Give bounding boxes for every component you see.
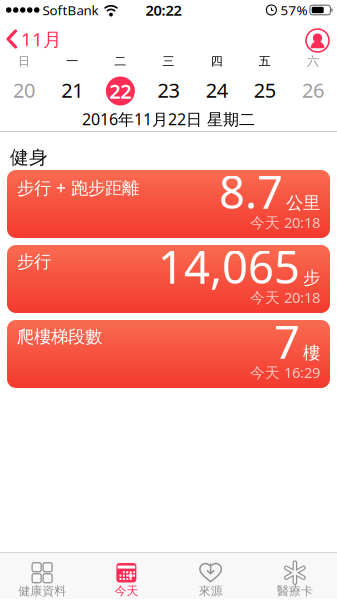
staticText: 今天	[114, 584, 138, 598]
button[interactable]: 步行	[7, 245, 330, 313]
staticText: SoftBank	[42, 1, 98, 19]
staticText: 11月	[21, 27, 62, 51]
staticText: 公里	[286, 192, 320, 214]
staticText: 步行 + 跑步距離	[17, 176, 139, 199]
staticText: 24	[206, 77, 228, 103]
staticText: 五	[259, 54, 271, 69]
staticText: 今天 20:18	[250, 212, 320, 232]
staticText: 7	[274, 311, 300, 371]
staticText: 步	[303, 267, 320, 289]
staticText: 來源	[199, 584, 223, 598]
staticText: 14,065	[158, 236, 300, 296]
staticText: 步行	[17, 251, 51, 272]
button[interactable]: 22	[96, 75, 144, 105]
staticText: 今天 20:18	[250, 287, 320, 307]
staticText: 六	[307, 54, 319, 69]
staticText: 日	[18, 54, 30, 69]
staticText: 一	[66, 54, 78, 69]
button[interactable]: 23	[144, 75, 192, 105]
staticText: 20:22	[145, 0, 181, 20]
button[interactable]: 21	[48, 75, 96, 105]
button[interactable]: 健康資料	[0, 553, 84, 599]
staticText: 二	[114, 54, 126, 69]
staticText: 21	[61, 77, 83, 103]
button[interactable]: 20	[0, 75, 48, 105]
staticText: 樓	[303, 342, 320, 364]
button[interactable]: 26	[289, 75, 337, 105]
staticText: 26	[302, 77, 324, 103]
staticText: 20	[13, 77, 35, 103]
staticText: 健康資料	[18, 584, 66, 598]
staticText: 爬樓梯段數	[17, 326, 102, 347]
staticText: 醫療卡	[277, 584, 313, 598]
button[interactable]: 步行 + 跑步距離	[7, 170, 330, 238]
staticText: 今天 16:29	[250, 362, 320, 382]
staticText: 健身	[10, 146, 48, 169]
staticText: 8.7	[219, 161, 283, 221]
staticText: 2016年11月22日 星期二	[82, 108, 255, 130]
button[interactable]: 今天	[84, 553, 168, 599]
button[interactable]: Profile	[306, 27, 337, 50]
staticText: 四	[211, 54, 223, 69]
button[interactable]: 來源	[168, 553, 253, 599]
button[interactable]: 醫療卡	[253, 553, 337, 599]
staticText: 25	[254, 77, 276, 103]
staticText: 57%	[280, 1, 307, 19]
button[interactable]: 11月	[0, 27, 62, 51]
button[interactable]: 爬樓梯段數	[7, 320, 330, 388]
staticText: 23	[157, 77, 179, 103]
button[interactable]: 25	[241, 75, 289, 105]
button[interactable]: 24	[193, 75, 241, 105]
staticText: 22	[109, 78, 131, 104]
staticText: 三	[162, 54, 174, 69]
